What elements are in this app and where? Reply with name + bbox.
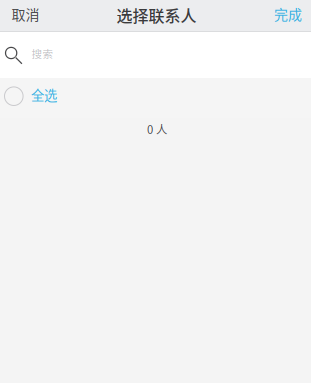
staticText: 取消 xyxy=(11,4,39,24)
staticText: 0 人 xyxy=(147,121,167,137)
staticText: 全选 xyxy=(31,85,57,104)
staticText: 完成 xyxy=(274,4,302,24)
button[interactable]: 全选 xyxy=(0,78,311,118)
button[interactable]: 搜索 xyxy=(0,32,311,78)
staticText: 搜索 xyxy=(31,46,53,61)
button[interactable]: 取消 xyxy=(0,0,50,31)
staticText: 选择联系人 xyxy=(116,3,196,27)
button[interactable]: 完成 xyxy=(257,0,311,31)
